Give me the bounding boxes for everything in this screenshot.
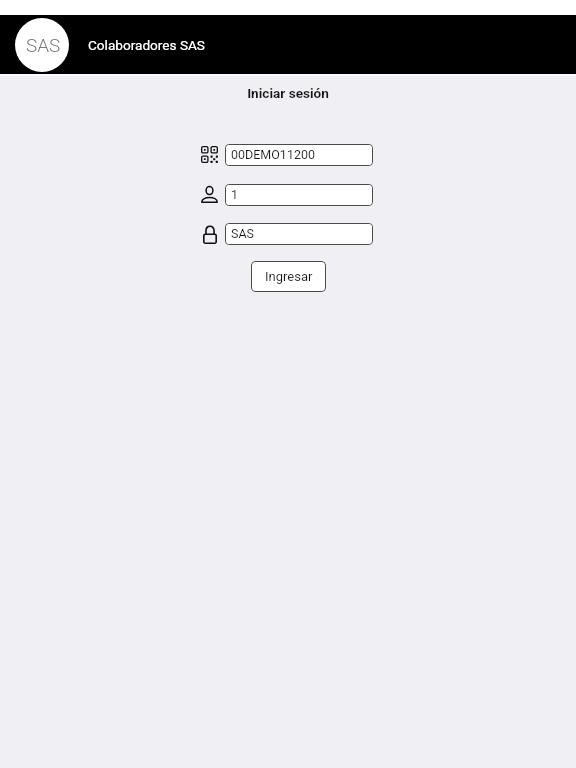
staticText: Colaboradores SAS [88, 37, 205, 53]
other: Scan code [201, 146, 218, 163]
button[interactable]: SAS logo [15, 18, 69, 72]
button[interactable]: Password [225, 223, 373, 245]
staticText: 1 [231, 187, 239, 202]
button[interactable]: Scan QR code [199, 144, 219, 164]
other: Password [203, 224, 217, 244]
staticText: SAS [231, 226, 254, 241]
other: User name [201, 186, 218, 203]
staticText: SAS [26, 34, 61, 56]
staticText: Iniciar sesión [0, 85, 576, 101]
staticText: Ingresar [265, 269, 313, 284]
button[interactable]: Ingresar [251, 261, 326, 292]
button[interactable]: Scan code [225, 144, 373, 166]
staticText: 00DEMO11200 [231, 147, 315, 162]
button[interactable]: User name [225, 184, 373, 206]
